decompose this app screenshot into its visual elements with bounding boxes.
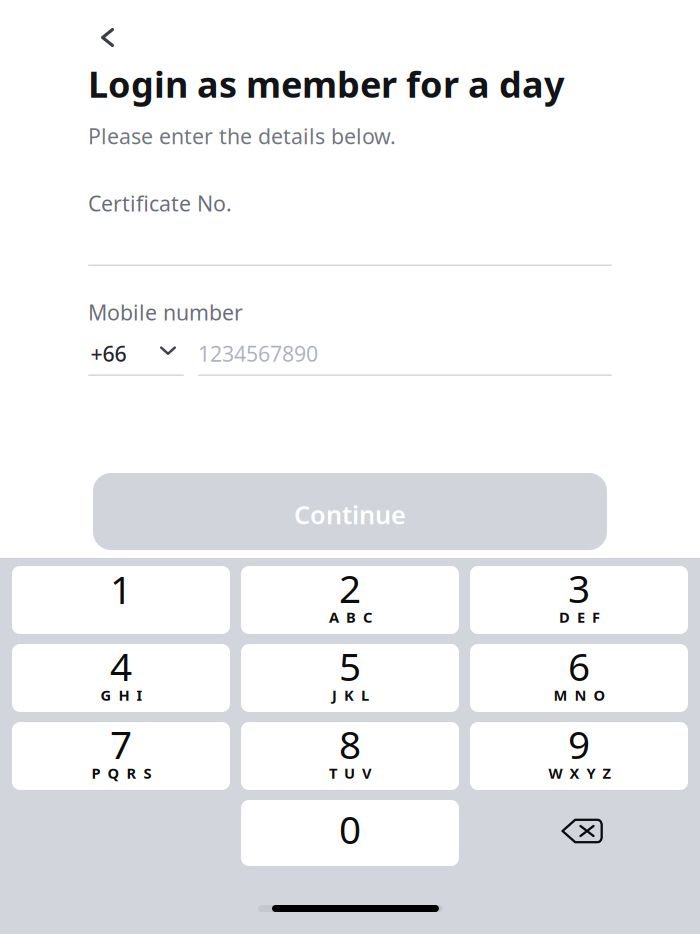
button[interactable]: 3 [470,566,688,634]
staticText: TUV [329,763,372,783]
staticText: PQRS [91,763,151,783]
button[interactable]: +66 [88,339,184,367]
staticText: Mobile number [88,298,243,326]
staticText: 5 [339,640,361,692]
button[interactable]: 4 [12,644,230,712]
button[interactable]: 8 [241,722,459,790]
staticText: 9 [568,718,590,770]
staticText: DEF [559,607,600,627]
staticText: Certificate No. [88,189,232,217]
button[interactable]: 2 [241,566,459,634]
staticText: 8 [339,718,361,770]
button[interactable]: 0 [241,800,459,866]
button[interactable]: Delete [470,800,688,866]
staticText: JKL [332,685,369,705]
staticText: 6 [568,640,590,692]
staticText: MNO [553,685,605,705]
button[interactable]: 1 [12,566,230,634]
staticText: WXYZ [548,763,610,783]
button[interactable]: 7 [12,722,230,790]
staticText: Continue [294,498,406,531]
button[interactable]: 6 [470,644,688,712]
staticText: Please enter the details below. [88,122,396,150]
staticText: 1234567890 [198,339,318,367]
staticText: 1 [110,563,132,615]
button[interactable]: 9 [470,722,688,790]
button[interactable]: Certificate No. [88,189,612,266]
staticText: Login as member for a day [88,60,565,108]
staticText: 7 [110,718,132,770]
button[interactable]: 1234567890 [198,339,612,376]
staticText: ABC [329,607,372,627]
button[interactable]: 5 [241,644,459,712]
button[interactable]: Continue [93,473,607,550]
button[interactable]: Back [88,20,144,55]
staticText: 0 [339,803,361,855]
staticText: 4 [110,640,132,692]
staticText: 2 [339,562,361,614]
staticText: +66 [90,339,126,367]
staticText: GHI [100,685,142,705]
staticText: 3 [568,562,590,614]
